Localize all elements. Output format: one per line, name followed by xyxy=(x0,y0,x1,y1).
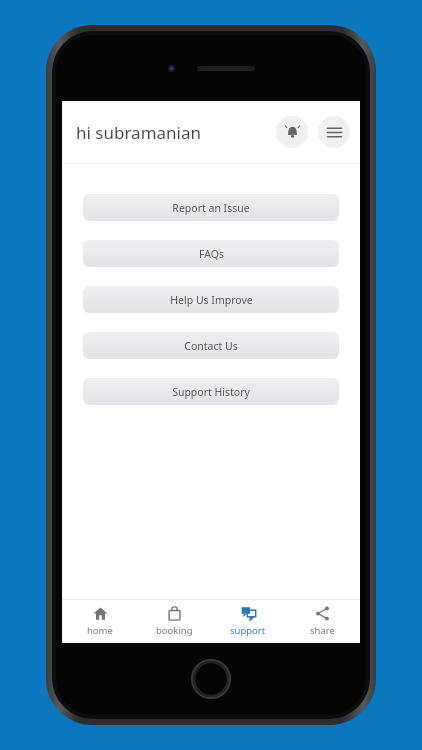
staticText: hi subramanian xyxy=(76,121,202,144)
button[interactable]: Support History xyxy=(83,378,339,405)
staticText: Contact Us xyxy=(184,339,238,353)
button[interactable]: booking xyxy=(138,600,210,643)
staticText: share xyxy=(310,624,335,637)
staticText: home xyxy=(87,624,113,637)
button[interactable]: Help Us Improve xyxy=(83,286,339,313)
button[interactable]: share xyxy=(286,600,358,643)
button[interactable]: Report an Issue xyxy=(83,194,339,221)
button[interactable]: Notifications xyxy=(276,116,308,148)
staticText: Report an Issue xyxy=(172,201,250,215)
staticText: FAQs xyxy=(199,247,224,261)
staticText: support xyxy=(230,624,266,637)
staticText: Support History xyxy=(172,385,250,399)
staticText: Help Us Improve xyxy=(170,293,253,307)
button[interactable]: Menu xyxy=(318,116,350,148)
button[interactable]: Contact Us xyxy=(83,332,339,359)
button[interactable]: support xyxy=(212,600,284,643)
staticText: booking xyxy=(156,624,193,637)
button[interactable]: home xyxy=(64,600,136,643)
button[interactable]: FAQs xyxy=(83,240,339,267)
